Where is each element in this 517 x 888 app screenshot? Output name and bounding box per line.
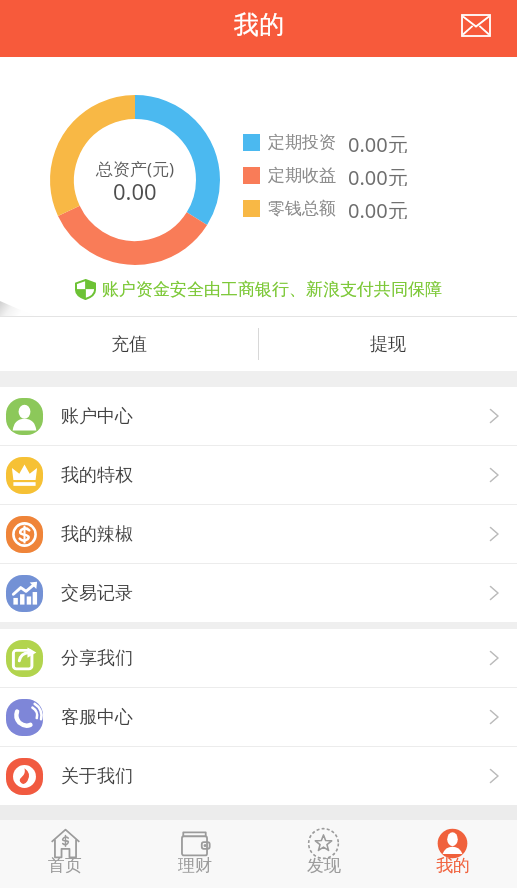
staticText: 首页 — [48, 855, 82, 876]
staticText: 交易记录 — [61, 582, 133, 605]
staticText: 我的 — [234, 9, 284, 40]
staticText: 我的特权 — [61, 464, 133, 487]
staticText: 发现 — [307, 855, 341, 876]
button[interactable]: 发现 — [259, 820, 388, 888]
button[interactable]: 理财 — [130, 820, 259, 888]
button[interactable]: 分享我们 — [0, 629, 517, 687]
button[interactable]: 充值 — [0, 317, 258, 371]
button[interactable]: 关于我们 — [0, 747, 517, 805]
staticText: 零钱总额 — [268, 198, 336, 219]
staticText: 充值 — [111, 333, 147, 356]
staticText: 理财 — [178, 855, 212, 876]
staticText: 提现 — [370, 333, 406, 356]
button[interactable]: 客服中心 — [0, 688, 517, 746]
button[interactable]: 交易记录 — [0, 564, 517, 622]
button[interactable]: 账户中心 — [0, 387, 517, 445]
staticText: 0.00 — [113, 176, 157, 206]
button[interactable]: 提现 — [259, 317, 517, 371]
staticText: 定期收益 — [268, 165, 336, 186]
staticText: 账户资金安全由工商银行、新浪支付共同保障 — [102, 279, 442, 300]
staticText: 0.00元 — [348, 164, 408, 186]
button[interactable] — [462, 15, 490, 36]
button[interactable]: 首页 — [0, 820, 130, 888]
staticText: 0.00元 — [348, 131, 408, 153]
staticText: 0.00元 — [348, 197, 408, 219]
staticText: 关于我们 — [61, 765, 133, 788]
staticText: 客服中心 — [61, 706, 133, 729]
staticText: 分享我们 — [61, 647, 133, 670]
button[interactable]: 我的辣椒 — [0, 505, 517, 563]
button[interactable]: 我的 — [388, 820, 517, 888]
staticText: 总资产(元) — [96, 157, 175, 180]
button[interactable]: 我的特权 — [0, 446, 517, 504]
staticText: 我的辣椒 — [61, 523, 133, 546]
staticText: 账户中心 — [61, 405, 133, 428]
staticText: 定期投资 — [268, 132, 336, 153]
staticText: 我的 — [436, 855, 470, 876]
